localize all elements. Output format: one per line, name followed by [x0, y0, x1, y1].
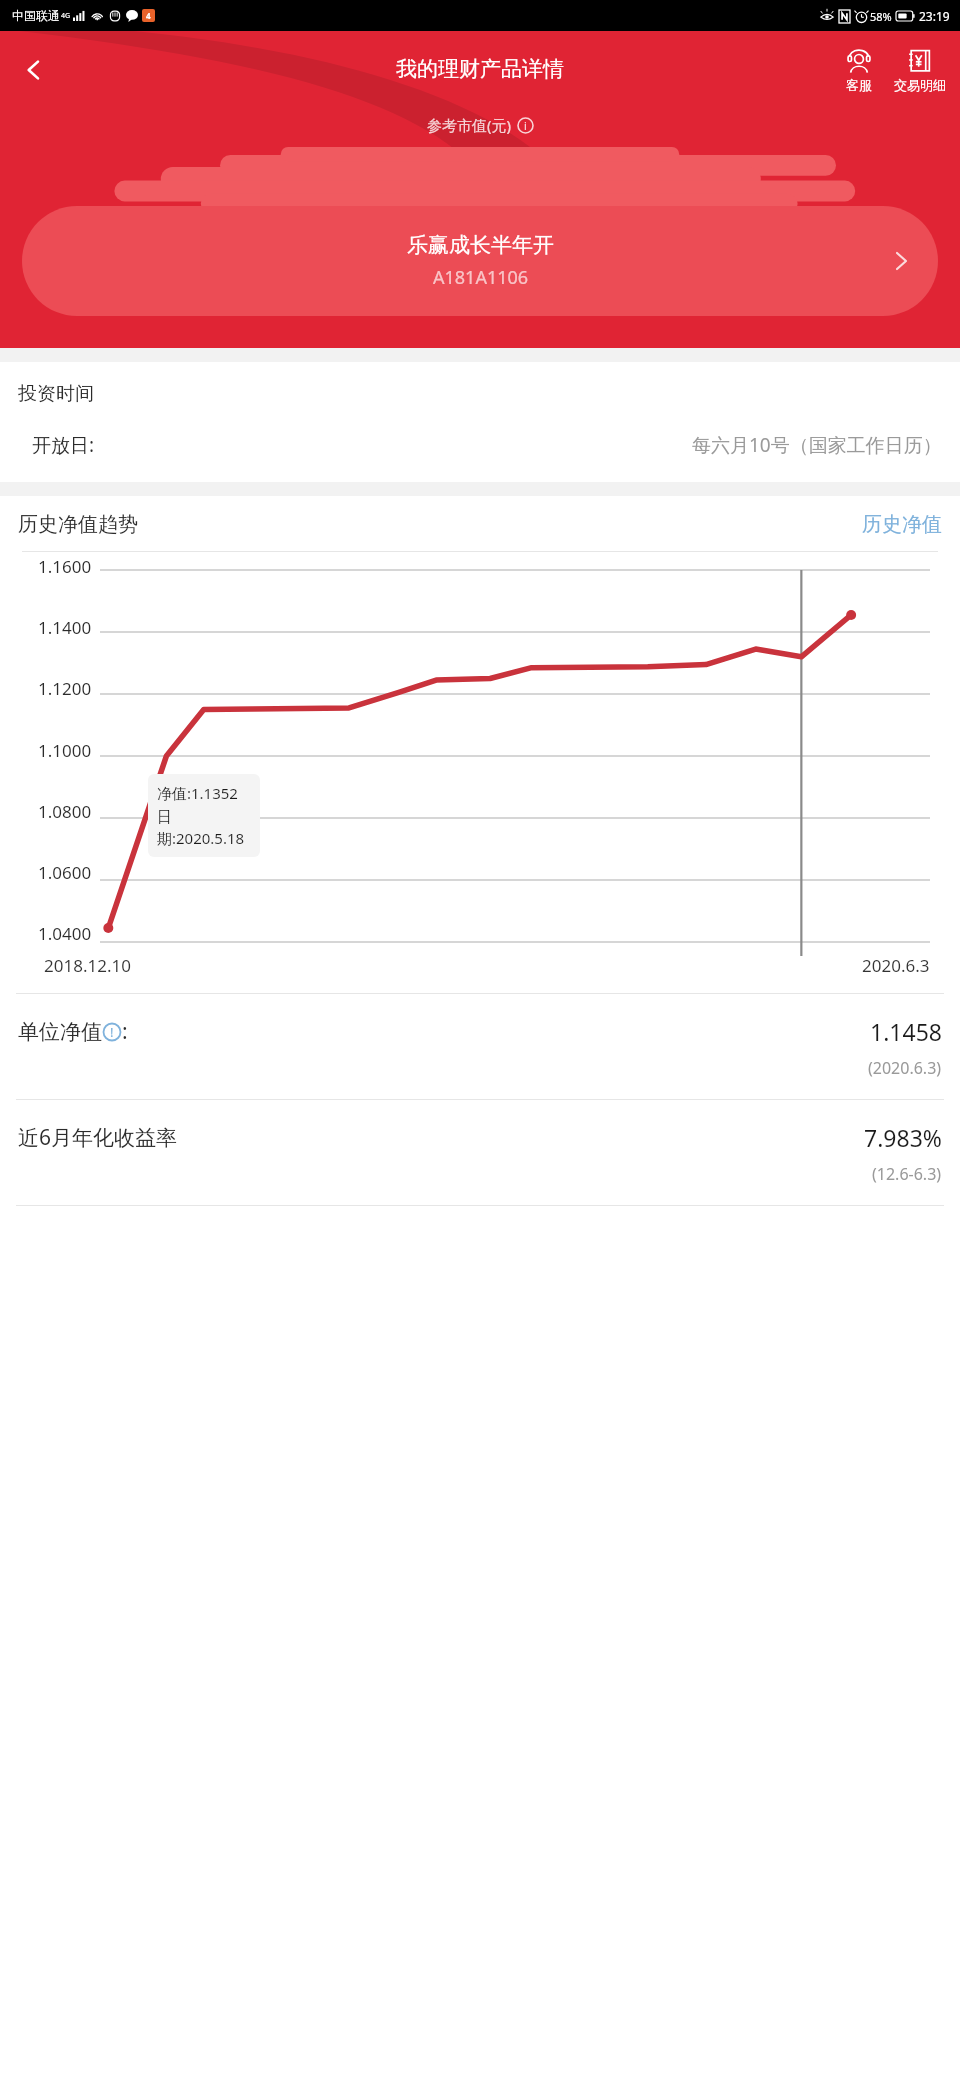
- staticText: 历史净值趋势: [18, 512, 138, 537]
- staticText: 净值:1.1352: [157, 783, 238, 803]
- staticText: 交易明细: [894, 77, 946, 93]
- staticText: 2018.12.10: [44, 954, 131, 977]
- staticText: 4: [146, 10, 151, 21]
- button[interactable]: 单位净值: [0, 994, 960, 1099]
- staticText: 历史净值: [862, 512, 942, 537]
- button[interactable]: 历史净值: [862, 512, 942, 537]
- staticText: 我的理财产品详情: [396, 56, 564, 82]
- staticText: (2020.6.3): [868, 1057, 942, 1079]
- staticText: 58%: [870, 9, 892, 24]
- staticText: 投资时间: [18, 382, 94, 406]
- staticText: 近6月年化收益率: [18, 1123, 178, 1152]
- staticText: 中国联通: [12, 8, 60, 23]
- button[interactable]: 客服: [842, 46, 876, 95]
- staticText: :: [122, 1017, 128, 1046]
- staticText: 1.1600: [38, 555, 92, 578]
- staticText: 1.1200: [38, 677, 92, 700]
- button[interactable]: 返回: [8, 44, 60, 96]
- staticText: 客服: [846, 77, 872, 93]
- staticText: 1.1000: [38, 739, 92, 762]
- staticText: 日期:2020.5.18: [157, 808, 251, 848]
- staticText: 1.1400: [38, 616, 92, 639]
- staticText: 1.1458: [870, 1016, 942, 1047]
- staticText: 23:19: [919, 8, 950, 24]
- button[interactable]: 乐赢成长半年开: [22, 206, 938, 316]
- staticText: 每六月10号（国家工作日历）: [692, 432, 942, 458]
- button[interactable]: 近6月年化收益率: [0, 1100, 960, 1205]
- staticText: 单位净值: [18, 1019, 102, 1045]
- staticText: 4G: [61, 11, 71, 21]
- button[interactable]: 交易明细: [890, 46, 950, 95]
- staticText: i: [524, 118, 527, 133]
- staticText: (12.6-6.3): [872, 1163, 942, 1185]
- staticText: 1.0800: [38, 800, 92, 823]
- staticText: 开放日:: [32, 432, 95, 458]
- staticText: 乐赢成长半年开: [407, 232, 554, 258]
- button[interactable]: 说明: [517, 117, 534, 134]
- staticText: 2020.6.3: [862, 954, 930, 977]
- staticText: 1.0400: [38, 922, 92, 945]
- staticText: 7.983%: [864, 1122, 942, 1153]
- staticText: 1.0600: [38, 861, 92, 884]
- staticText: 参考市值(元): [427, 115, 512, 135]
- staticText: A181A1106: [433, 265, 529, 290]
- staticText: !: [110, 1023, 114, 1041]
